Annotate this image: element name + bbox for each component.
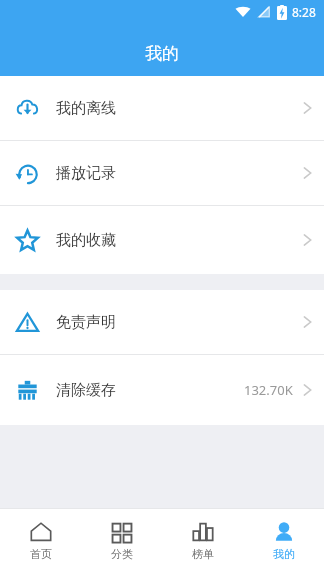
button[interactable]: 我的离线 — [0, 76, 324, 140]
staticText: 我的 — [145, 43, 179, 64]
staticText: 清除缓存 — [56, 381, 116, 400]
button[interactable]: 播放记录 — [0, 141, 324, 205]
staticText: 分类 — [111, 547, 133, 561]
staticText: 播放记录 — [56, 164, 116, 183]
button[interactable]: 清除缓存 — [0, 355, 324, 425]
button[interactable]: 免责声明 — [0, 290, 324, 354]
staticText: 8:28 — [292, 4, 316, 20]
staticText: 我的离线 — [56, 99, 116, 118]
staticText: 免责声明 — [56, 313, 116, 332]
button[interactable]: 首页 — [0, 508, 81, 574]
staticText: 首页 — [30, 547, 52, 561]
staticText: 榜单 — [192, 547, 214, 561]
button[interactable]: 我的 — [243, 508, 324, 574]
button[interactable]: 分类 — [81, 508, 162, 574]
button[interactable]: 我的收藏 — [0, 206, 324, 274]
staticText: 我的收藏 — [56, 231, 116, 250]
staticText: 132.70K — [244, 381, 293, 399]
staticText: 我的 — [273, 547, 295, 561]
button[interactable]: 榜单 — [162, 508, 243, 574]
